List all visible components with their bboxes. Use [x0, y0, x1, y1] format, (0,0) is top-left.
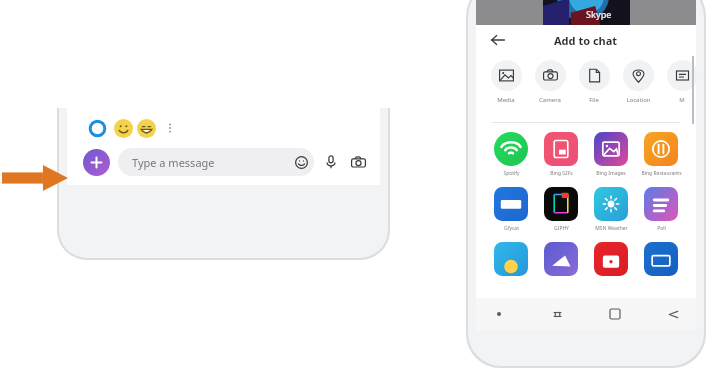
button[interactable]: [486, 242, 536, 276]
button[interactable]: Gfycat: [486, 187, 536, 232]
staticText: Media: [497, 96, 515, 104]
staticText: Bing Images: [596, 170, 626, 177]
button[interactable]: Spotify: [486, 132, 536, 177]
staticText: Spotify: [503, 170, 520, 177]
staticText: Type a message: [132, 155, 215, 170]
button[interactable]: Media: [484, 60, 528, 104]
button[interactable]: Camera: [348, 152, 368, 172]
button[interactable]: Back: [662, 303, 684, 325]
button[interactable]: More reactions: [163, 121, 177, 135]
button[interactable]: File: [572, 60, 616, 104]
button[interactable]: Menu dot: [488, 303, 510, 325]
staticText: MSN Weather: [595, 225, 628, 232]
staticText: File: [589, 96, 599, 104]
staticText: M: [679, 96, 685, 104]
staticText: Skype: [586, 8, 612, 20]
button[interactable]: Bing GIFs: [536, 132, 586, 177]
button[interactable]: MSN Weather: [586, 187, 636, 232]
button[interactable]: Emoji: [290, 151, 312, 173]
button[interactable]: Reaction: [86, 117, 108, 139]
button[interactable]: Type a message: [118, 148, 314, 176]
button[interactable]: Location: [616, 60, 660, 104]
staticText: Gfycat: [504, 225, 519, 232]
button[interactable]: Voice message: [321, 152, 341, 172]
button[interactable]: Back: [486, 28, 510, 52]
button[interactable]: Bing Restaurants: [636, 132, 686, 177]
staticText: Bing GIFs: [550, 170, 573, 177]
staticText: Add to chat: [554, 33, 618, 48]
button[interactable]: [586, 242, 636, 276]
button[interactable]: Poll: [636, 187, 686, 232]
button[interactable]: [636, 242, 686, 276]
button[interactable]: Camera: [528, 60, 572, 104]
staticText: Camera: [539, 96, 561, 104]
button[interactable]: Laugh: [137, 119, 156, 138]
staticText: GIPHY: [554, 225, 569, 232]
button[interactable]: Add to chat: [83, 149, 110, 176]
staticText: Poll: [657, 225, 666, 232]
button[interactable]: M: [660, 60, 704, 104]
button[interactable]: Home: [604, 303, 626, 325]
staticText: Location: [626, 96, 651, 104]
button[interactable]: Smile: [114, 119, 133, 138]
button[interactable]: [536, 242, 586, 276]
button[interactable]: Bing Images: [586, 132, 636, 177]
button[interactable]: GIPHY: [536, 187, 586, 232]
button[interactable]: Recents: [546, 303, 568, 325]
staticText: Bing Restaurants: [641, 170, 682, 177]
